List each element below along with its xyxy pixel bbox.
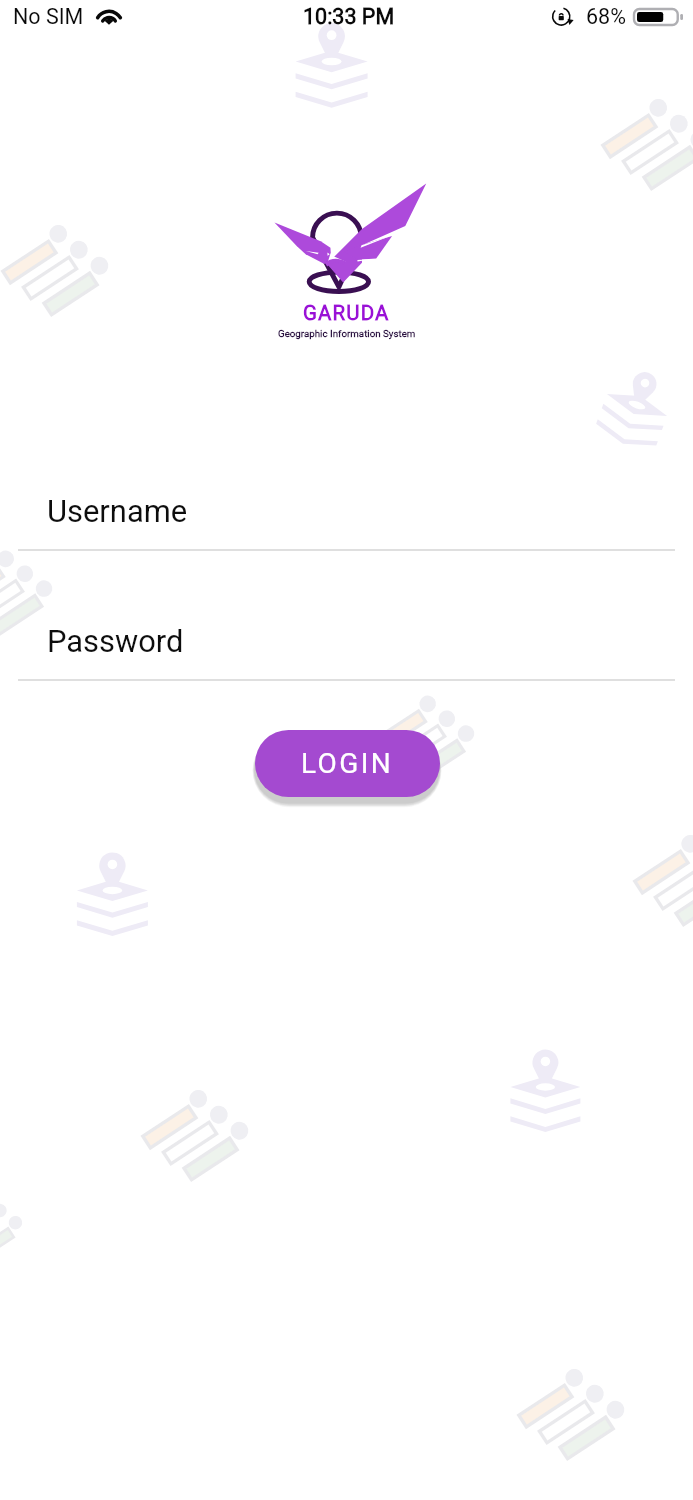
- staticText: 68%: [586, 4, 626, 29]
- staticText: LOGIN: [301, 747, 394, 780]
- staticText: 10:33 PM: [303, 4, 395, 29]
- staticText: Password: [47, 623, 184, 659]
- other: Rotation lock: [552, 7, 573, 26]
- staticText: Username: [47, 493, 188, 529]
- staticText: No SIM: [13, 4, 84, 29]
- button[interactable]: LOGIN: [255, 730, 440, 797]
- staticText: GARUDA: [303, 301, 390, 325]
- staticText: Geographic Information System: [278, 328, 416, 339]
